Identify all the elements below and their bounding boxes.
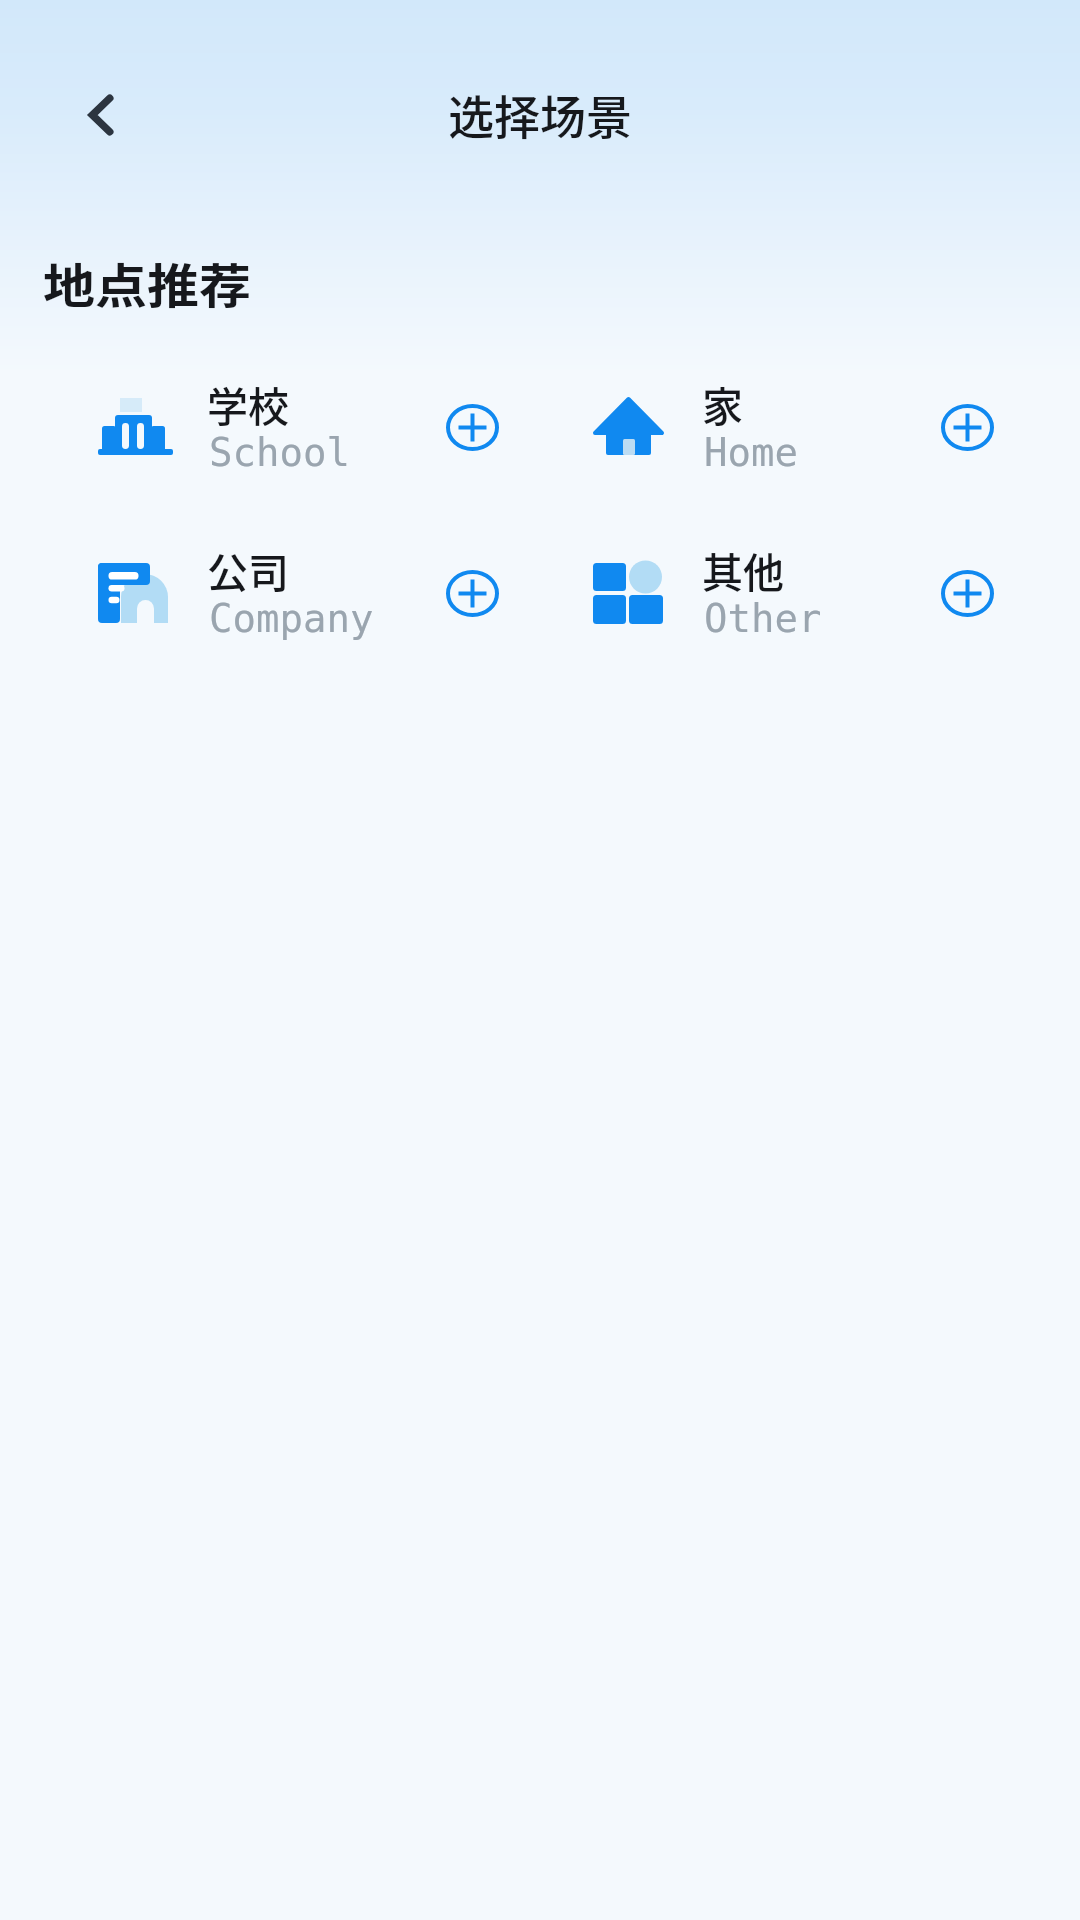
button[interactable]: Add Other [932, 558, 1002, 628]
button[interactable]: 学校 [60, 382, 555, 472]
button[interactable]: Add School [437, 392, 507, 462]
button[interactable]: Back [65, 80, 135, 150]
staticText: 选择场景 [448, 81, 632, 148]
staticText: 公司 [207, 540, 289, 599]
button[interactable]: 其他 [555, 548, 1050, 638]
staticText: Company [209, 596, 374, 641]
staticText: School [209, 430, 350, 475]
staticText: Home [704, 430, 798, 475]
button[interactable]: Add Company [437, 558, 507, 628]
button[interactable]: 家 [555, 382, 1050, 472]
staticText: 学校 [207, 374, 289, 433]
staticText: 地点推荐 [43, 249, 252, 316]
staticText: Other [704, 596, 822, 641]
button[interactable]: Add Home [932, 392, 1002, 462]
staticText: 其他 [702, 540, 784, 599]
button[interactable]: 公司 [60, 548, 555, 638]
staticText: 家 [702, 374, 743, 433]
